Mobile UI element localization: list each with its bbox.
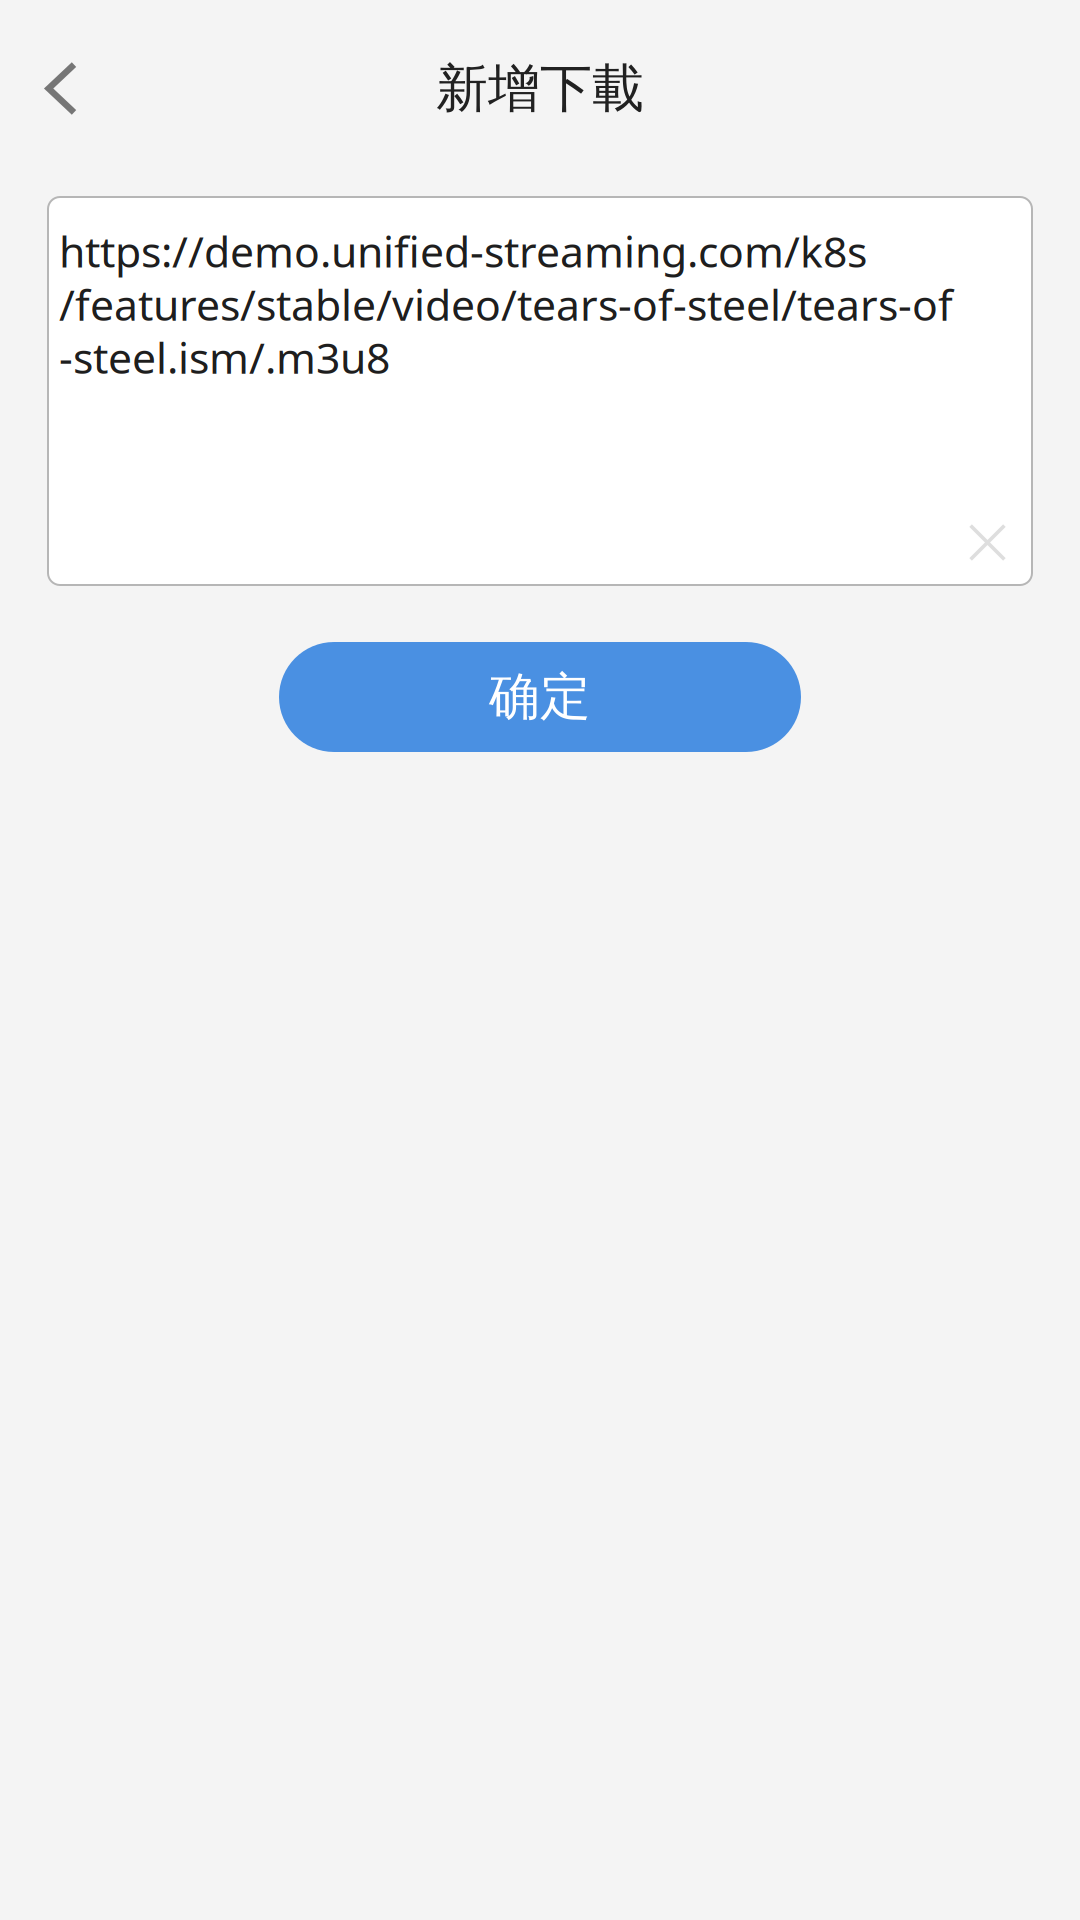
staticText: 确定 [489, 665, 591, 729]
staticText: 新增下載 [436, 56, 644, 121]
button[interactable]: 确定 [279, 642, 801, 752]
button[interactable]: https://demo.unified-streaming.com/k8s /… [48, 197, 1032, 585]
button[interactable]: Back [0, 0, 113, 144]
button[interactable]: Clear text [969, 524, 1032, 585]
staticText: https://demo.unified-streaming.com/k8s /… [59, 222, 953, 386]
